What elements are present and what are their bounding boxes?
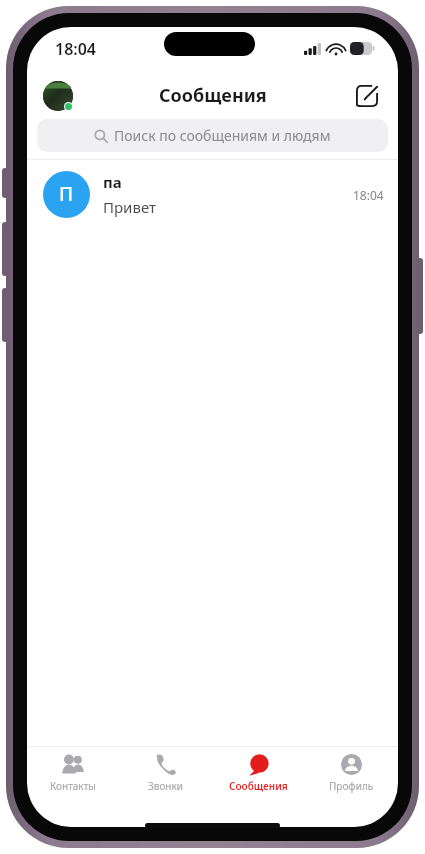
staticText: 18:04 <box>55 38 97 60</box>
button[interactable]: Новое сообщение <box>350 79 384 113</box>
staticText: П <box>59 181 74 207</box>
staticText: Контакты <box>50 779 96 793</box>
button[interactable]: Поиск по сообщениям и людям <box>37 119 388 152</box>
button[interactable]: Профиль <box>305 753 398 793</box>
button[interactable]: Контакты <box>27 753 119 793</box>
button[interactable]: Профиль <box>43 81 73 111</box>
button[interactable]: Сообщения <box>212 753 305 793</box>
staticText: Привет <box>103 197 156 217</box>
button[interactable]: Звонки <box>119 753 212 793</box>
button[interactable]: П <box>27 160 398 228</box>
staticText: Звонки <box>148 779 184 793</box>
staticText: 18:04 <box>353 187 384 203</box>
staticText: Профиль <box>329 779 374 793</box>
staticText: Сообщения <box>159 83 267 108</box>
staticText: Сообщения <box>229 779 288 793</box>
staticText: па <box>103 172 122 192</box>
staticText: Поиск по сообщениям и людям <box>114 126 331 145</box>
